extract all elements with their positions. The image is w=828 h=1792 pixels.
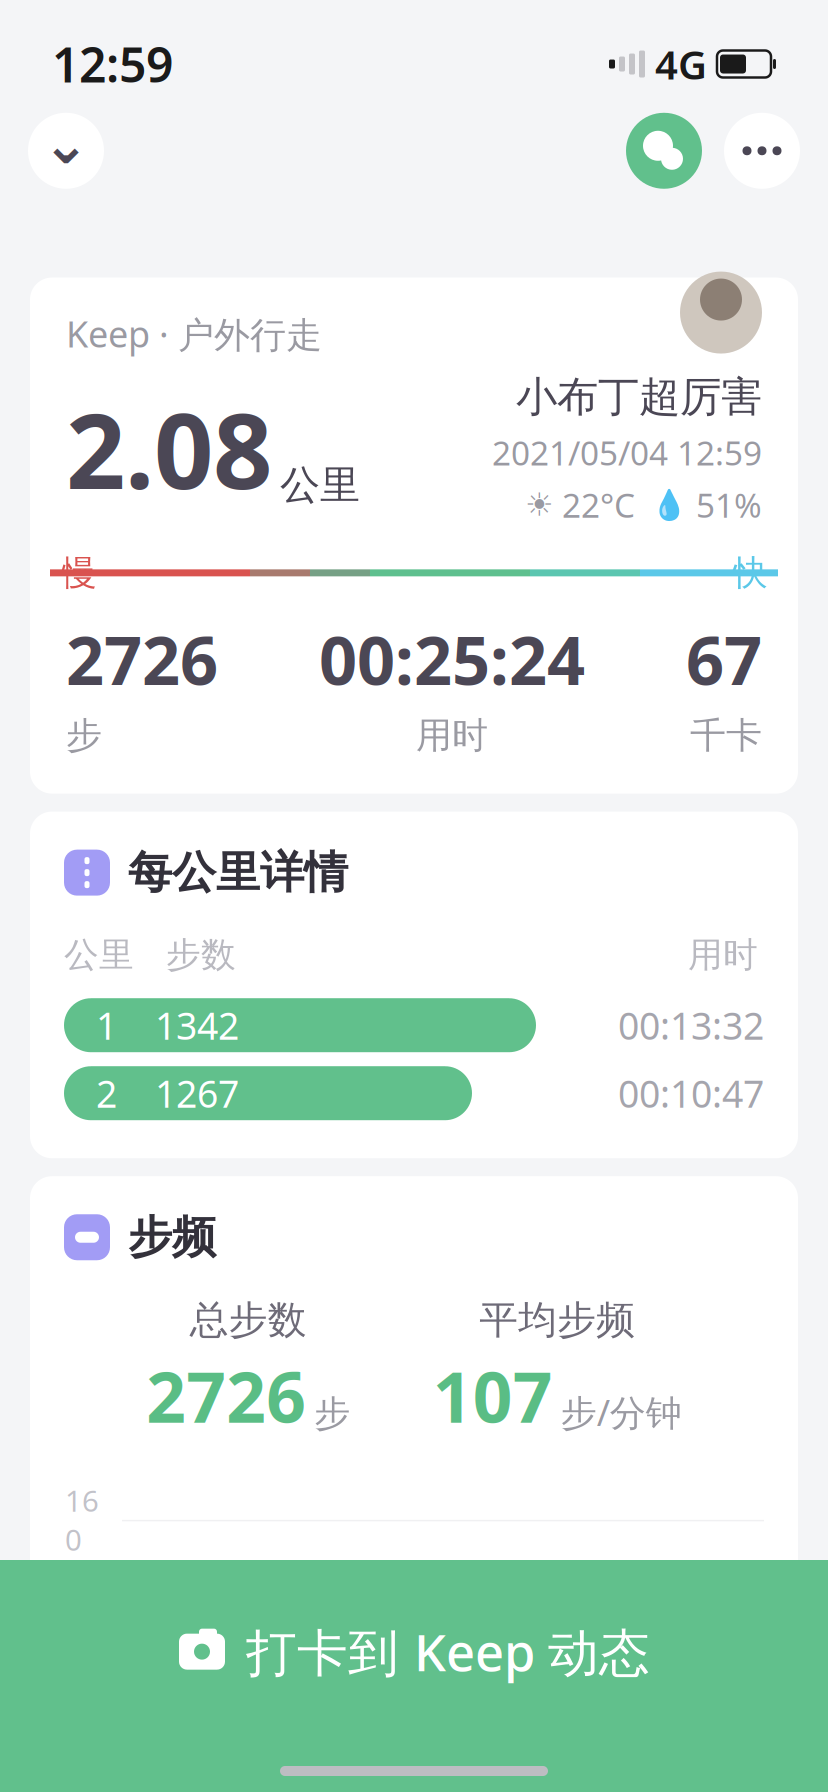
staticText: 用时 [416,713,488,758]
staticText: 4G [655,37,707,90]
staticText: 160 [65,1481,99,1559]
staticText: 公里 [64,934,134,976]
staticText: 平均步频 [479,1296,635,1344]
staticText: 2021/05/04 12:59 [492,430,762,475]
staticText: 步频 [128,1210,216,1264]
staticText: 公里 [280,460,360,510]
staticText: 步 [66,713,102,758]
staticText: 2726 [146,1350,306,1442]
staticText: 千卡 [690,713,762,758]
staticText: 2.08 [66,380,272,518]
button[interactable]: Share to WeChat [626,113,702,189]
staticText: 步/分钟 [561,1388,682,1436]
staticText: 00:13:32 [618,1000,764,1050]
staticText: 67 [686,615,762,703]
staticText: 1267 [155,1068,239,1118]
staticText: 107 [433,1350,553,1442]
staticText: 总步数 [190,1296,307,1344]
staticText: ⌄ [42,112,89,176]
staticText: 00:25:24 [319,615,585,703]
staticText: 22°C [562,483,635,527]
staticText: 打卡到 Keep 动态 [246,1618,650,1685]
staticText: 步 [314,1392,350,1436]
staticText: 1 [96,1000,117,1050]
staticText: 慢 [62,552,97,594]
button[interactable]: 打卡到 Keep 动态 [0,1560,828,1792]
staticText: 12:59 [52,32,173,96]
staticText: 小布丁超厉害 [516,372,762,422]
staticText: 51% [696,483,762,527]
staticText: 00:10:47 [618,1068,764,1118]
staticText: 用时 [688,934,758,976]
staticText: ☀ [525,487,554,523]
button[interactable]: Collapse [28,112,104,190]
staticText: 2726 [66,615,218,703]
staticText: 每公里详情 [128,846,348,900]
staticText: 1342 [155,1000,239,1050]
staticText: 快 [733,552,768,594]
staticText: 128 [65,1557,99,1635]
staticText: 💧 [651,488,688,521]
staticText: 步数 [166,934,236,976]
staticText: Keep · 户外行走 [66,310,322,358]
button[interactable]: More [724,113,800,189]
staticText: 2 [96,1068,117,1118]
